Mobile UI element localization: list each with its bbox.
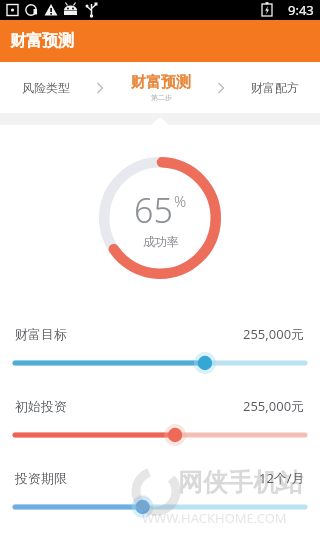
button[interactable]: 投资期限	[0, 455, 320, 518]
button[interactable]: 财富配方	[229, 62, 320, 113]
button[interactable]: 财富预测	[108, 62, 213, 113]
staticText: %	[174, 191, 187, 211]
staticText: 财富目标	[15, 326, 67, 342]
other: Next	[92, 79, 108, 97]
button[interactable]: 风险类型	[0, 62, 92, 113]
staticText: 网侠手机站	[178, 467, 303, 498]
staticText: WWW.HACKHOME.COM	[142, 509, 287, 527]
staticText: 12个/月	[259, 469, 305, 487]
staticText: 初始投资	[15, 398, 67, 414]
button[interactable]: 财富目标	[0, 311, 320, 374]
staticText: 9:43	[288, 1, 314, 19]
staticText: 投资期限	[15, 470, 67, 486]
staticText: 255,000元	[243, 325, 305, 343]
staticText: 第二步	[151, 93, 172, 102]
staticText: 财富预测	[131, 73, 191, 92]
other: Next	[213, 79, 229, 97]
staticText: 65	[134, 187, 173, 233]
staticText: 255,000元	[243, 397, 305, 415]
staticText: 财富配方	[251, 80, 299, 95]
button[interactable]: 初始投资	[0, 383, 320, 446]
staticText: 成功率	[143, 234, 179, 249]
staticText: 财富预测	[10, 31, 74, 51]
staticText: 风险类型	[22, 80, 70, 95]
